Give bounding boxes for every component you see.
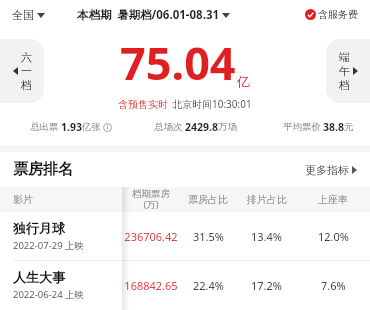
button[interactable]: 六 — [0, 39, 44, 103]
staticText: 17.2% — [251, 278, 282, 293]
staticText: 北京时间10:30:01 — [172, 97, 252, 111]
staticText: 端 — [339, 50, 350, 64]
staticText: 人生大事 — [13, 269, 65, 285]
staticText: 总出票 — [30, 121, 59, 133]
button[interactable]: 本档期 — [77, 7, 230, 23]
staticText: 一 — [21, 64, 32, 78]
staticText: 影片 — [13, 193, 33, 206]
staticText: 上座率 — [318, 193, 348, 206]
staticText: 12.0% — [318, 229, 349, 244]
staticText: 档 — [21, 78, 32, 92]
staticText: 1.93 — [61, 120, 82, 134]
staticText: 平均票价 — [283, 121, 321, 133]
button[interactable]: 更多指标 — [305, 163, 357, 177]
staticText: 总场次 — [154, 121, 183, 133]
button[interactable]: 含服务费 — [305, 8, 358, 21]
staticText: 更多指标 — [305, 163, 349, 177]
staticText: 含预售实时 — [118, 98, 168, 111]
staticText: 午 — [339, 64, 350, 78]
staticText: 票房占比 — [188, 193, 228, 206]
staticText: 2429.8 — [185, 120, 218, 134]
staticText: 档期票房 (万) — [132, 188, 170, 211]
button[interactable]: 端 — [326, 39, 370, 103]
staticText: 万场 — [218, 121, 237, 133]
button[interactable]: 独行月球 — [0, 212, 370, 260]
staticText: 亿 — [237, 73, 250, 89]
staticText: 排片占比 — [247, 193, 287, 206]
staticText: 7.6% — [321, 278, 346, 293]
button[interactable]: 全国 — [12, 8, 45, 22]
staticText: 168842.65 — [124, 278, 178, 293]
staticText: 元 — [344, 121, 354, 133]
staticText: 含服务费 — [318, 8, 358, 21]
staticText: 38.8 — [323, 120, 344, 134]
staticText: 暑期档/06.01-08.31 — [117, 7, 220, 23]
staticText: 全国 — [12, 8, 34, 22]
staticText: 75.04 — [120, 32, 236, 93]
staticText: 亿张 — [82, 121, 101, 133]
staticText: 31.5% — [193, 229, 224, 244]
staticText: 22.4% — [193, 278, 224, 293]
staticText: 票房排名 — [13, 160, 73, 179]
staticText: 2022-06-24 上映 — [13, 288, 85, 301]
staticText: 236706.42 — [124, 229, 178, 244]
staticText: 六 — [21, 50, 32, 64]
staticText: 2022-07-29 上映 — [13, 239, 85, 252]
staticText: 档 — [339, 78, 350, 92]
staticText: 本档期 — [77, 8, 112, 22]
button[interactable]: 人生大事 — [0, 261, 370, 309]
staticText: 13.4% — [251, 229, 282, 244]
staticText: 独行月球 — [13, 220, 65, 236]
